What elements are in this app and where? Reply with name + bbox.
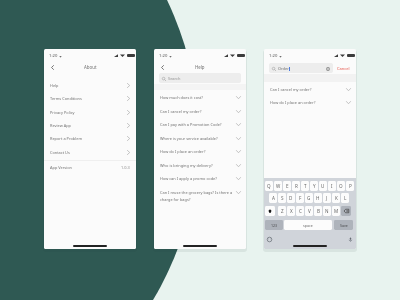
staticText: C [299,208,302,214]
button[interactable]: A [269,193,277,203]
button[interactable]: H [314,193,322,203]
button[interactable]: U [319,181,327,191]
staticText: Help [195,64,205,70]
staticText: G [307,195,311,201]
button[interactable]: 123 [265,220,283,230]
button[interactable]: D [287,193,295,203]
staticText: K [335,195,338,201]
staticText: About [84,64,97,70]
button[interactable]: Contact Us [44,146,136,159]
staticText: Y [313,183,316,189]
staticText: Privacy Policy [50,110,75,115]
button[interactable]: How do I place an order? [264,100,356,105]
button[interactable]: Clear text [326,67,330,71]
button[interactable]: Save [334,220,353,230]
button[interactable]: N [323,206,331,216]
staticText: Terms Conditions [50,96,82,101]
button[interactable]: K [332,193,340,203]
staticText: 1:20 [49,53,58,59]
staticText: H [316,195,320,201]
staticText: X [290,208,293,214]
staticText: Search [168,76,181,81]
button[interactable]: Can I reuse the grocery bags? Is there a… [154,186,246,198]
button[interactable]: P [346,181,354,191]
staticText: 1:20 [159,53,168,59]
button[interactable]: space [284,220,332,230]
button[interactable]: M [332,206,340,216]
button[interactable]: Report a Problem [44,132,136,145]
button[interactable]: Review App [44,119,136,132]
button[interactable]: Backspace [341,206,351,216]
button[interactable]: R [292,181,300,191]
staticText: How much does it cost? [160,95,235,100]
staticText: I [331,183,333,189]
staticText: 1:20 [269,53,278,59]
button[interactable]: Help [44,79,136,92]
staticText: T [304,183,307,189]
button[interactable]: F [296,193,304,203]
staticText: How do I place an order? [270,100,344,105]
button[interactable]: Search [159,73,241,83]
staticText: Order [278,66,289,71]
staticText: Where is your service available? [160,136,235,141]
staticText: Contact Us [50,150,70,155]
staticText: M [334,208,339,214]
button[interactable]: L [341,193,349,203]
staticText: V [308,208,311,214]
button[interactable]: T [301,181,309,191]
button[interactable]: X [287,206,295,216]
button[interactable]: Terms Conditions [44,92,136,105]
staticText: A [272,195,275,201]
button[interactable]: B [314,206,322,216]
staticText: 123 [271,223,278,228]
button[interactable]: Back [47,62,58,73]
staticText: Can I cancel my order? [270,87,344,92]
button[interactable]: Dictate [348,237,353,242]
staticText: Can I cancel my order? [160,109,235,114]
staticText: Review App [50,123,71,128]
staticText: space [303,223,313,228]
button[interactable]: Cancel [336,65,351,72]
staticText: 1.0.3 [121,165,130,170]
staticText: W [276,183,281,189]
button[interactable]: Order [269,63,333,73]
button[interactable]: V [305,206,313,216]
button[interactable]: Shift [265,206,275,216]
button[interactable]: Emoji [267,237,272,242]
staticText: E [286,183,289,189]
button[interactable]: Z [278,206,286,216]
staticText: Help [50,83,59,88]
button[interactable]: Q [265,181,273,191]
button[interactable]: O [337,181,345,191]
button[interactable]: S [278,193,286,203]
staticText: J [326,195,328,201]
staticText: Who is bringing my delivery? [160,163,235,168]
staticText: U [321,183,325,189]
button[interactable]: J [323,193,331,203]
staticText: How do I place an order? [160,149,235,154]
button[interactable]: Can I cancel my order? [264,87,356,92]
button[interactable]: E [283,181,291,191]
staticText: B [317,208,320,214]
button[interactable]: I [328,181,336,191]
staticText: Q [267,183,271,189]
staticText: F [299,195,302,201]
staticText: L [344,195,347,201]
button[interactable]: C [296,206,304,216]
staticText: O [339,183,343,189]
button[interactable]: App Version [44,161,136,174]
button[interactable]: W [274,181,282,191]
button[interactable]: G [305,193,313,203]
staticText: S [281,195,284,201]
staticText: P [349,183,352,189]
button[interactable]: Privacy Policy [44,106,136,119]
button[interactable]: Back [157,62,168,73]
button[interactable]: Y [310,181,318,191]
